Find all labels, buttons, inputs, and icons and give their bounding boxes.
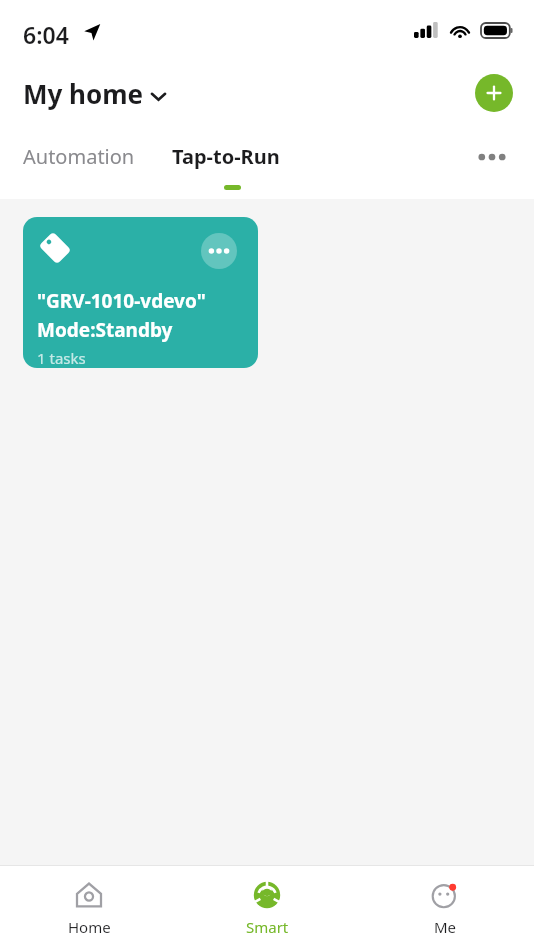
staticText: Automation: [23, 143, 135, 170]
button[interactable]: Home: [0, 866, 178, 950]
button[interactable]: My home: [23, 76, 172, 111]
staticText: Smart: [246, 917, 289, 937]
button[interactable]: More options: [470, 144, 514, 170]
button[interactable]: Scene options: [201, 233, 237, 269]
button[interactable]: Me: [356, 866, 534, 950]
button[interactable]: Tap-to-Run: [172, 134, 280, 178]
staticText: My home: [23, 76, 144, 111]
staticText: 6:04: [23, 19, 69, 50]
staticText: Mode:Standby: [37, 317, 173, 343]
button[interactable]: Add: [475, 74, 513, 112]
staticText: Home: [68, 917, 111, 937]
staticText: Me: [434, 917, 457, 937]
staticText: "GRV-1010-vdevo": [37, 288, 206, 314]
button[interactable]: Scene options: [23, 217, 258, 368]
staticText: Tap-to-Run: [172, 143, 280, 170]
button[interactable]: Smart: [178, 866, 356, 950]
staticText: 1 tasks: [37, 348, 86, 368]
button[interactable]: Automation: [23, 134, 135, 178]
